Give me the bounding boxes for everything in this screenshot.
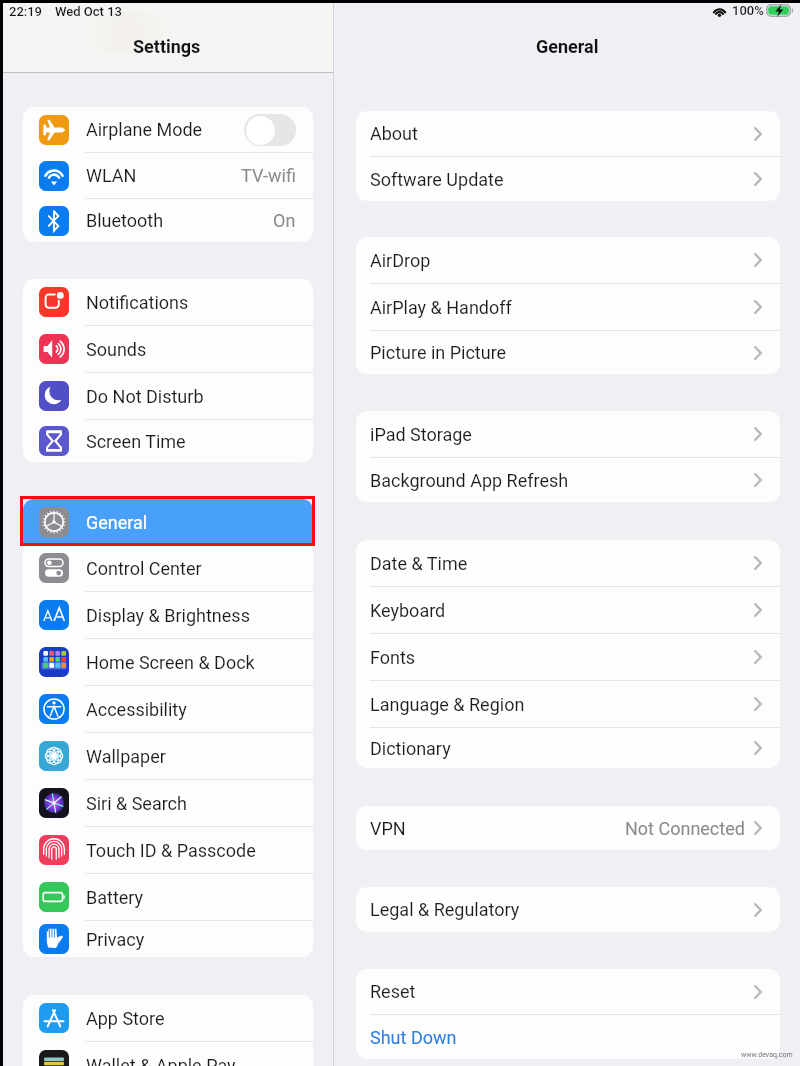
button[interactable]: Airplane Mode toggle — [244, 114, 296, 146]
staticText: Language & Region — [370, 694, 525, 715]
staticText: 22:19 — [9, 4, 43, 19]
staticText: Fonts — [370, 647, 416, 668]
button[interactable]: WLAN — [23, 153, 313, 198]
button[interactable]: Notifications — [23, 279, 313, 325]
button[interactable]: Battery — [23, 874, 313, 920]
staticText: Siri & Search — [86, 793, 187, 814]
button[interactable]: Reset — [356, 969, 780, 1014]
staticText: Airplane Mode — [86, 119, 203, 140]
button[interactable]: General — [23, 499, 313, 545]
staticText: AirPlay & Handoff — [370, 297, 512, 318]
button[interactable]: Keyboard — [356, 587, 780, 633]
staticText: iPad Storage — [370, 424, 472, 445]
button[interactable]: Airplane Mode — [23, 107, 313, 152]
button[interactable]: Shut Down — [356, 1015, 780, 1059]
staticText: Sounds — [86, 339, 147, 360]
staticText: On — [273, 210, 296, 231]
staticText: Legal & Regulatory — [370, 899, 520, 920]
button[interactable]: Picture in Picture — [356, 331, 780, 374]
button[interactable]: Display & Brightness — [23, 592, 313, 638]
button[interactable]: VPN — [356, 806, 780, 850]
staticText: Touch ID & Passcode — [86, 840, 256, 861]
staticText: Picture in Picture — [370, 342, 507, 363]
staticText: General — [536, 36, 599, 57]
button[interactable]: Wallpaper — [23, 733, 313, 779]
button[interactable]: Software Update — [356, 157, 780, 201]
button[interactable]: Wallet & Apple Pay — [23, 1042, 313, 1066]
staticText: Background App Refresh — [370, 470, 569, 491]
button[interactable]: App Store — [23, 995, 313, 1041]
button[interactable]: Privacy — [23, 921, 313, 957]
button[interactable]: Screen Time — [23, 420, 313, 462]
staticText: Settings — [133, 36, 201, 57]
button[interactable]: Language & Region — [356, 681, 780, 727]
button[interactable]: Home Screen & Dock — [23, 639, 313, 685]
staticText: VPN — [370, 818, 406, 839]
staticText: TV-wifi — [241, 165, 296, 186]
button[interactable]: Fonts — [356, 634, 780, 680]
staticText: Shut Down — [370, 1027, 457, 1048]
staticText: WLAN — [86, 165, 137, 186]
button[interactable]: Bluetooth — [23, 199, 313, 242]
staticText: Screen Time — [86, 431, 186, 452]
staticText: AirDrop — [370, 250, 431, 271]
staticText: Wallet & Apple Pay — [86, 1055, 236, 1066]
staticText: General — [86, 512, 148, 533]
staticText: Control Center — [86, 558, 202, 579]
staticText: Bluetooth — [86, 210, 164, 231]
staticText: Battery — [86, 887, 144, 908]
button[interactable]: AirDrop — [356, 237, 780, 283]
staticText: About — [370, 123, 418, 144]
button[interactable]: Do Not Disturb — [23, 373, 313, 419]
staticText: Display & Brightness — [86, 605, 250, 626]
button[interactable]: Sounds — [23, 326, 313, 372]
staticText: www.devaq.com — [741, 1051, 793, 1059]
staticText: Do Not Disturb — [86, 386, 204, 407]
button[interactable]: Background App Refresh — [356, 458, 780, 502]
staticText: Reset — [370, 981, 416, 1002]
staticText: Wallpaper — [86, 746, 166, 767]
staticText: Keyboard — [370, 600, 446, 621]
button[interactable]: Date & Time — [356, 540, 780, 586]
button[interactable]: Accessibility — [23, 686, 313, 732]
staticText: Accessibility — [86, 699, 187, 720]
button[interactable]: Control Center — [23, 545, 313, 591]
button[interactable]: Dictionary — [356, 728, 780, 768]
button[interactable]: iPad Storage — [356, 411, 780, 457]
button[interactable]: Legal & Regulatory — [356, 887, 780, 932]
staticText: Date & Time — [370, 553, 468, 574]
staticText: Privacy — [86, 929, 145, 950]
staticText: Home Screen & Dock — [86, 652, 255, 673]
button[interactable]: About — [356, 111, 780, 156]
staticText: 100% — [732, 3, 764, 18]
button[interactable]: AirPlay & Handoff — [356, 284, 780, 330]
staticText: Dictionary — [370, 738, 451, 759]
staticText: Notifications — [86, 292, 189, 313]
staticText: Software Update — [370, 169, 504, 190]
staticText: Wed Oct 13 — [55, 4, 122, 19]
staticText: App Store — [86, 1008, 165, 1029]
staticText: Not Connected — [625, 818, 745, 839]
button[interactable]: Touch ID & Passcode — [23, 827, 313, 873]
button[interactable]: Siri & Search — [23, 780, 313, 826]
